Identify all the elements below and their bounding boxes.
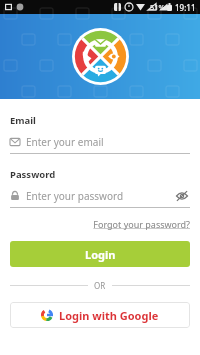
button[interactable]: Login with Google: [10, 302, 190, 328]
staticText: Password: [10, 168, 56, 181]
staticText: Enter your email: [26, 135, 104, 149]
button[interactable]: Forgot your password?: [93, 218, 190, 230]
button[interactable]: Show password: [174, 188, 190, 203]
button[interactable]: Login: [10, 241, 190, 267]
staticText: Enter your password: [26, 189, 174, 203]
button[interactable]: Enter your password: [10, 188, 190, 203]
button[interactable]: Enter your email: [10, 134, 190, 149]
staticText: 19:11: [175, 2, 196, 13]
staticText: Login: [85, 247, 116, 262]
staticText: OR: [94, 280, 106, 291]
staticText: 51%: [150, 2, 165, 12]
staticText: Login with Google: [59, 308, 159, 323]
staticText: Email: [10, 114, 36, 127]
